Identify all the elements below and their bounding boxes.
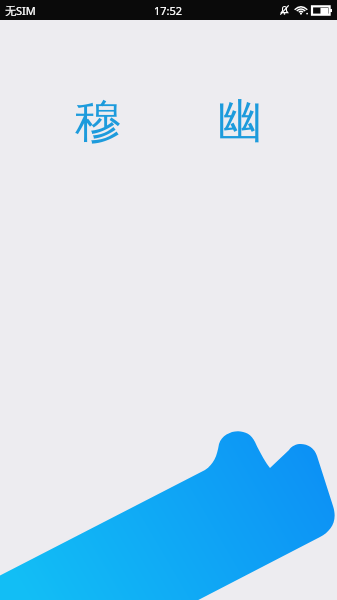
staticText: 穆: [75, 93, 121, 151]
button[interactable]: 幽: [210, 92, 270, 152]
staticText: 幽: [217, 93, 263, 151]
staticText: 17:52: [154, 3, 183, 18]
other: Battery charging: [312, 5, 332, 16]
other: Silent mode: [279, 4, 290, 16]
staticText: 无SIM: [5, 3, 36, 18]
button[interactable]: 穆: [68, 92, 128, 152]
other: Wi-Fi: [295, 4, 308, 16]
